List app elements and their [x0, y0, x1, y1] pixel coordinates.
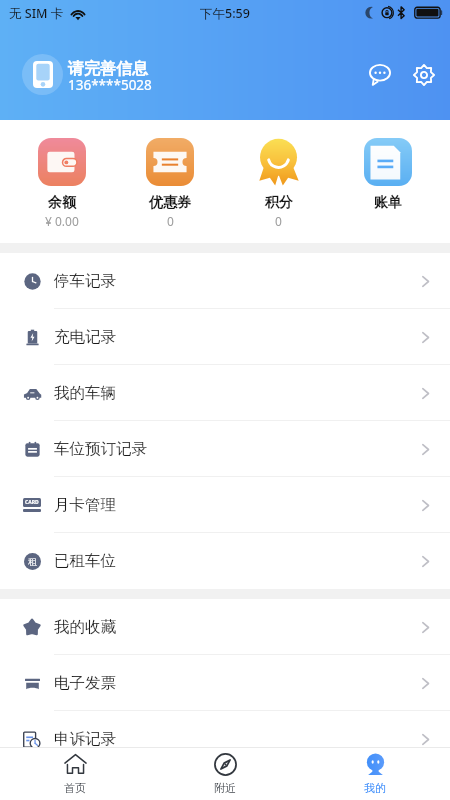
staticText: 车位预订记录	[54, 439, 147, 459]
staticText: 下午5:59	[200, 5, 250, 22]
button[interactable]: 充电记录	[0, 309, 450, 365]
button[interactable]: 我的车辆	[0, 365, 450, 421]
button[interactable]: 余额	[8, 120, 116, 243]
staticText: CARD	[25, 499, 39, 506]
button[interactable]: 租	[0, 533, 450, 589]
button[interactable]: 电子发票	[0, 655, 450, 711]
button[interactable]: 我的	[300, 748, 450, 800]
staticText: 首页	[64, 781, 86, 795]
staticText: 136****5028	[68, 76, 152, 94]
button[interactable]: 积分	[224, 120, 333, 243]
staticText: ¥ 0.00	[45, 213, 79, 229]
staticText: 请完善信息	[68, 59, 148, 79]
staticText: 月卡管理	[54, 495, 116, 515]
button[interactable]: 首页	[0, 748, 150, 800]
staticText: 申诉记录	[54, 729, 116, 749]
staticText: 电子发票	[54, 673, 116, 693]
staticText: 停车记录	[54, 271, 116, 291]
staticText: 积分	[265, 194, 293, 212]
staticText: 优惠券	[149, 194, 191, 212]
staticText: 附近	[214, 781, 236, 795]
staticText: 无 SIM 卡	[9, 5, 64, 22]
staticText: 账单	[374, 194, 402, 212]
staticText: 我的车辆	[54, 383, 116, 403]
staticText: 已租车位	[54, 551, 116, 571]
button[interactable]: 停车记录	[0, 253, 450, 309]
button[interactable]: 账单	[333, 120, 442, 243]
staticText: 我的收藏	[54, 617, 116, 637]
button[interactable]: Settings	[408, 59, 440, 91]
button[interactable]: 我的收藏	[0, 599, 450, 655]
staticText: 充电记录	[54, 327, 116, 347]
button[interactable]: 申诉记录	[0, 711, 450, 767]
staticText: 余额	[48, 194, 76, 212]
staticText: 0	[275, 213, 282, 229]
button[interactable]: 附近	[150, 748, 300, 800]
staticText: 0	[167, 213, 174, 229]
button[interactable]: 车位预订记录	[0, 421, 450, 477]
staticText: 租	[28, 556, 37, 567]
staticText: 我的	[364, 781, 386, 795]
button[interactable]: CARD	[0, 477, 450, 533]
button[interactable]: 优惠券	[116, 120, 224, 243]
button[interactable]: Messages	[364, 59, 396, 91]
